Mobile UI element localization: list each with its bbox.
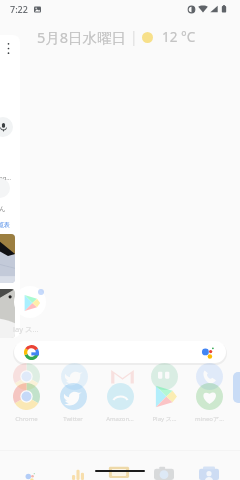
staticText: mineoア… [195,415,224,423]
button[interactable]: Contacts [199,466,219,480]
button[interactable]: Chrome [4,383,48,424]
staticText: Play ス… [152,415,177,423]
staticText: 7:22 [10,3,28,15]
staticText: 覧表 [0,221,10,229]
button[interactable]: Assistant [18,465,42,480]
button[interactable]: Amazon… [98,383,142,424]
button[interactable]: Twitter [51,383,95,424]
button[interactable]: Search [14,341,226,363]
staticText: Amazon… [106,415,134,423]
button[interactable]: Wallet [107,466,131,480]
staticText: Twitter [63,415,83,423]
staticText: ん [0,205,6,213]
staticText: 12 °C [162,28,196,46]
staticText: og… [0,174,12,182]
staticText: 5月8日水曜日 [37,27,127,47]
staticText: lay ス… [13,324,39,334]
button[interactable]: Camera [154,466,174,480]
button[interactable]: Play ス… [142,383,186,424]
button[interactable]: Analytics [66,466,90,480]
other: More options [6,43,11,54]
button[interactable]: mineoア… [187,383,231,424]
staticText: | [130,28,138,46]
staticText: Chrome [15,415,38,423]
